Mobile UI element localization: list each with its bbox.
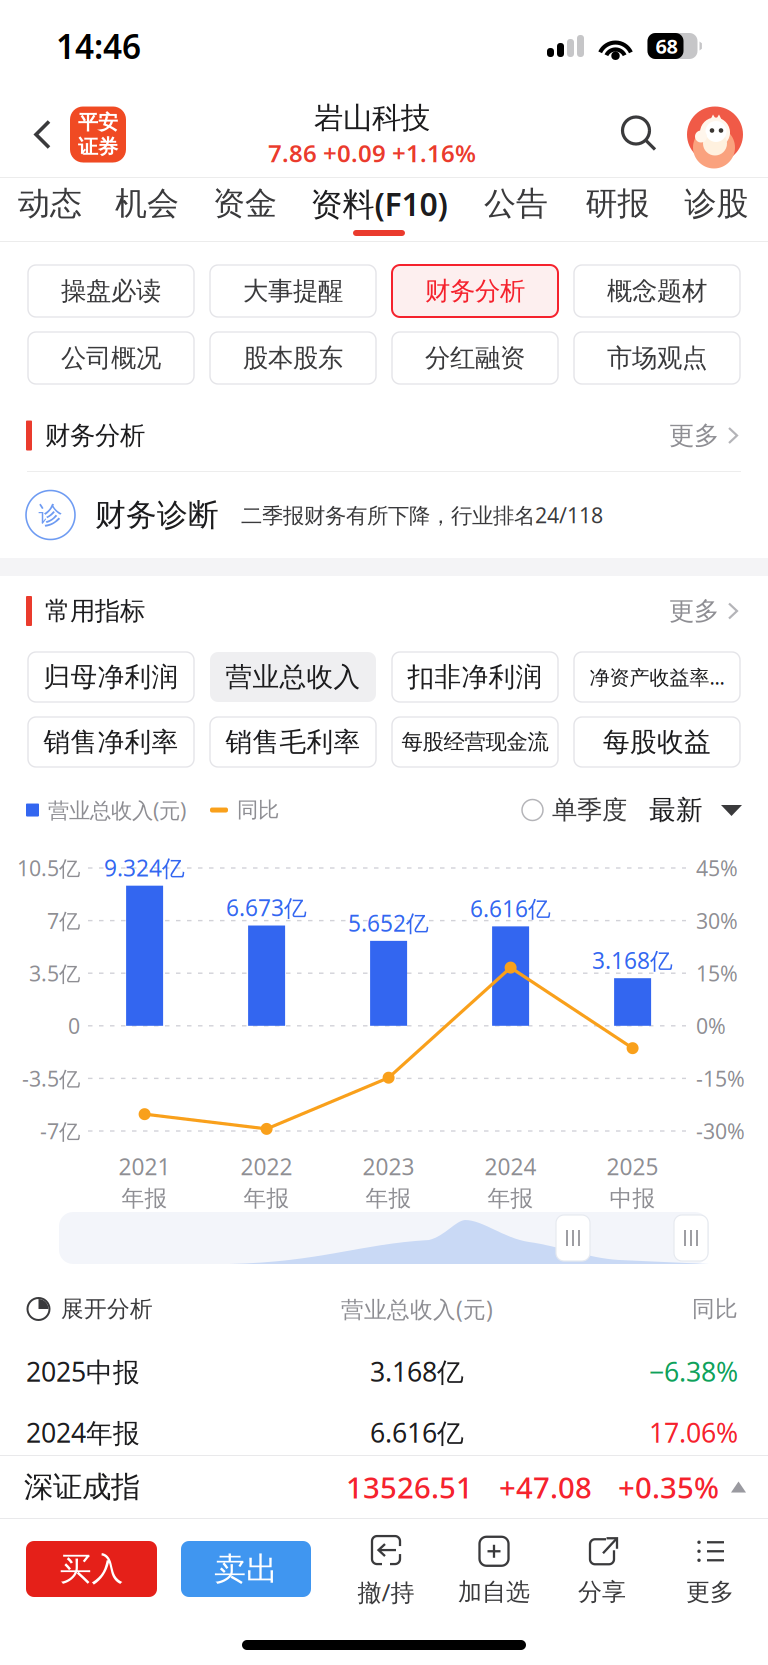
staticText: 3.168亿: [370, 1354, 464, 1389]
button[interactable]: 研报: [568, 178, 667, 241]
staticText: 加自选: [458, 1577, 530, 1607]
staticText: 45%: [696, 854, 738, 882]
staticText: 2021: [119, 1151, 171, 1182]
staticText: 6.673亿: [226, 892, 307, 923]
staticText: 单季度: [552, 794, 627, 825]
staticText: 2025: [607, 1151, 659, 1182]
staticText: 5.652亿: [348, 908, 429, 938]
button[interactable]: 大事提醒: [210, 265, 376, 317]
button[interactable]: 展开分析: [26, 1282, 236, 1336]
staticText: 30%: [696, 906, 738, 935]
button[interactable]: 资金: [196, 178, 294, 241]
button[interactable]: 买入: [26, 1541, 157, 1597]
staticText: 更多: [686, 1577, 734, 1607]
staticText: 0%: [696, 1012, 726, 1040]
staticText: 动态: [18, 184, 82, 223]
staticText: 大事提醒: [243, 275, 343, 306]
staticText: 二季报财务有所下降，行业排名24/118: [241, 501, 603, 529]
staticText: 3.168亿: [592, 945, 673, 975]
button[interactable]: 每股经营现金流: [392, 717, 558, 767]
staticText: 68: [655, 33, 677, 59]
button[interactable]: 动态: [2, 178, 98, 241]
staticText: 17.06%: [649, 1415, 738, 1450]
staticText: 中报: [610, 1185, 656, 1212]
button[interactable]: 归母净利润: [28, 652, 194, 702]
button[interactable]: 扣非净利润: [392, 652, 558, 702]
button[interactable]: 单季度: [522, 794, 627, 825]
staticText: 证券: [78, 134, 118, 159]
button[interactable]: 分享: [548, 1525, 656, 1613]
button[interactable]: 加自选: [440, 1525, 548, 1613]
staticText: 14:46: [56, 24, 141, 68]
staticText: 财务诊断: [95, 496, 219, 534]
button[interactable]: 销售净利率: [28, 717, 194, 767]
staticText: 财务分析: [425, 275, 525, 306]
button[interactable]: 搜索: [616, 111, 662, 157]
staticText: 市场观点: [607, 342, 707, 373]
staticText: 分享: [578, 1577, 626, 1607]
button[interactable]: 销售毛利率: [210, 717, 376, 767]
button[interactable]: 概念题材: [574, 265, 740, 317]
staticText: 2024年报: [26, 1415, 140, 1450]
staticText: 营业总收入(元): [48, 796, 186, 824]
staticText: 营业总收入(元): [341, 1294, 493, 1324]
staticText: 2024: [485, 1151, 537, 1182]
staticText: 概念题材: [607, 275, 707, 306]
button[interactable]: 更多: [669, 595, 742, 626]
staticText: 最新: [649, 794, 703, 826]
staticText: 机会: [115, 184, 179, 223]
button[interactable]: 个人中心: [686, 105, 744, 163]
staticText: 诊: [38, 500, 62, 530]
staticText: 9.324亿: [104, 853, 185, 883]
staticText: 股本股东: [243, 342, 343, 373]
button[interactable]: 每股收益: [574, 717, 740, 767]
button[interactable]: 诊: [0, 472, 768, 558]
staticText: 更多: [669, 420, 719, 451]
button[interactable]: 卖出: [181, 1541, 311, 1597]
staticText: 研报: [585, 184, 649, 223]
staticText: 展开分析: [61, 1295, 153, 1323]
button[interactable]: 诊股: [667, 178, 766, 241]
staticText: 常用指标: [45, 595, 145, 626]
staticText: 资金: [213, 184, 277, 223]
staticText: 年报: [244, 1185, 290, 1212]
button[interactable]: 资料(F10): [294, 178, 464, 241]
button[interactable]: 市场观点: [574, 332, 740, 384]
staticText: -7亿: [40, 1117, 80, 1145]
button[interactable]: 分红融资: [392, 332, 558, 384]
button[interactable]: 公告: [464, 178, 568, 241]
button[interactable]: 营业总收入: [210, 652, 376, 702]
staticText: 更多: [669, 595, 719, 626]
button[interactable]: 返回: [22, 111, 64, 157]
staticText: +0.35%: [618, 1467, 719, 1506]
staticText: 6.616亿: [370, 1415, 464, 1450]
staticText: 操盘必读: [61, 275, 161, 306]
button[interactable]: 机会: [98, 178, 196, 241]
staticText: 分红融资: [425, 342, 525, 373]
button[interactable]: 财务分析: [392, 265, 558, 317]
button[interactable]: 最新: [649, 794, 742, 826]
staticText: 2022: [241, 1151, 293, 1182]
staticText: 年报: [366, 1185, 412, 1212]
button[interactable]: 更多: [669, 420, 742, 451]
staticText: 卖出: [214, 1549, 278, 1589]
button[interactable]: 平安证券: [68, 104, 128, 164]
staticText: +47.08: [499, 1467, 592, 1506]
button[interactable]: 操盘必读: [28, 265, 194, 317]
staticText: 2025中报: [26, 1354, 140, 1389]
staticText: 同比: [692, 1295, 738, 1323]
staticText: 年报: [122, 1185, 168, 1212]
button[interactable]: 净资产收益率...: [574, 652, 740, 702]
staticText: 深证成指: [24, 1469, 140, 1505]
staticText: 买入: [59, 1549, 123, 1589]
staticText: 年报: [488, 1185, 534, 1212]
staticText: 公告: [484, 184, 548, 223]
staticText: -3.5亿: [22, 1064, 80, 1092]
staticText: 归母净利润: [43, 661, 178, 693]
staticText: 7亿: [47, 906, 80, 935]
button[interactable]: 股本股东: [210, 332, 376, 384]
button[interactable]: 公司概况: [28, 332, 194, 384]
button[interactable]: 撤/持: [332, 1525, 440, 1613]
button[interactable]: 更多: [656, 1525, 764, 1613]
staticText: 10.5亿: [17, 854, 80, 882]
